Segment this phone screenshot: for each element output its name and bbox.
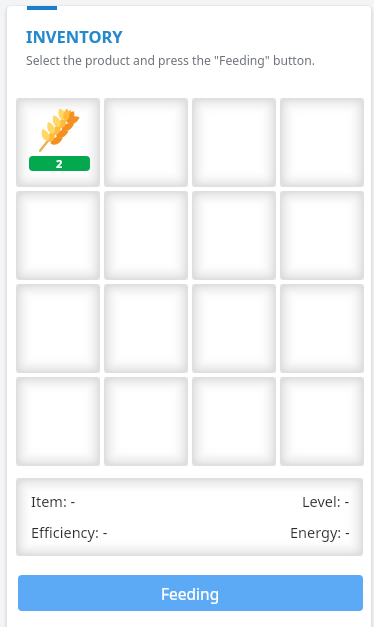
button[interactable]: Inventory slot 16 bbox=[280, 377, 364, 466]
staticText: Level: - bbox=[302, 491, 350, 511]
staticText: 2 bbox=[56, 156, 63, 171]
button[interactable]: Inventory slot 11 bbox=[192, 284, 276, 373]
staticText: Feeding bbox=[161, 583, 220, 604]
button[interactable]: Inventory slot 3 bbox=[192, 98, 276, 187]
button[interactable]: Inventory slot 8 bbox=[280, 191, 364, 280]
button[interactable]: Inventory slot 5 bbox=[16, 191, 100, 280]
button[interactable]: Inventory slot 1 bbox=[16, 98, 100, 187]
button[interactable]: Inventory slot 13 bbox=[16, 377, 100, 466]
button[interactable]: Inventory slot 6 bbox=[104, 191, 188, 280]
button[interactable]: Inventory slot 2 bbox=[104, 98, 188, 187]
button[interactable]: Inventory slot 7 bbox=[192, 191, 276, 280]
staticText: Efficiency: - bbox=[31, 522, 108, 542]
staticText: Item: - bbox=[31, 491, 76, 511]
button[interactable]: Inventory slot 12 bbox=[280, 284, 364, 373]
button[interactable]: Inventory slot 15 bbox=[192, 377, 276, 466]
button[interactable]: Inventory slot 4 bbox=[280, 98, 364, 187]
staticText: INVENTORY bbox=[26, 25, 123, 47]
button[interactable]: Inventory slot 10 bbox=[104, 284, 188, 373]
staticText: Select the product and press the "Feedin… bbox=[26, 52, 315, 69]
button[interactable]: Inventory slot 14 bbox=[104, 377, 188, 466]
staticText: Energy: - bbox=[290, 522, 350, 542]
button[interactable]: Feeding bbox=[18, 575, 363, 611]
button[interactable]: Inventory slot 9 bbox=[16, 284, 100, 373]
